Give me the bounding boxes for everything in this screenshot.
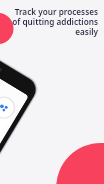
staticText: Track your processes of quitting addicti…: [10, 6, 98, 37]
button[interactable]: App screen preview: [0, 0, 104, 184]
